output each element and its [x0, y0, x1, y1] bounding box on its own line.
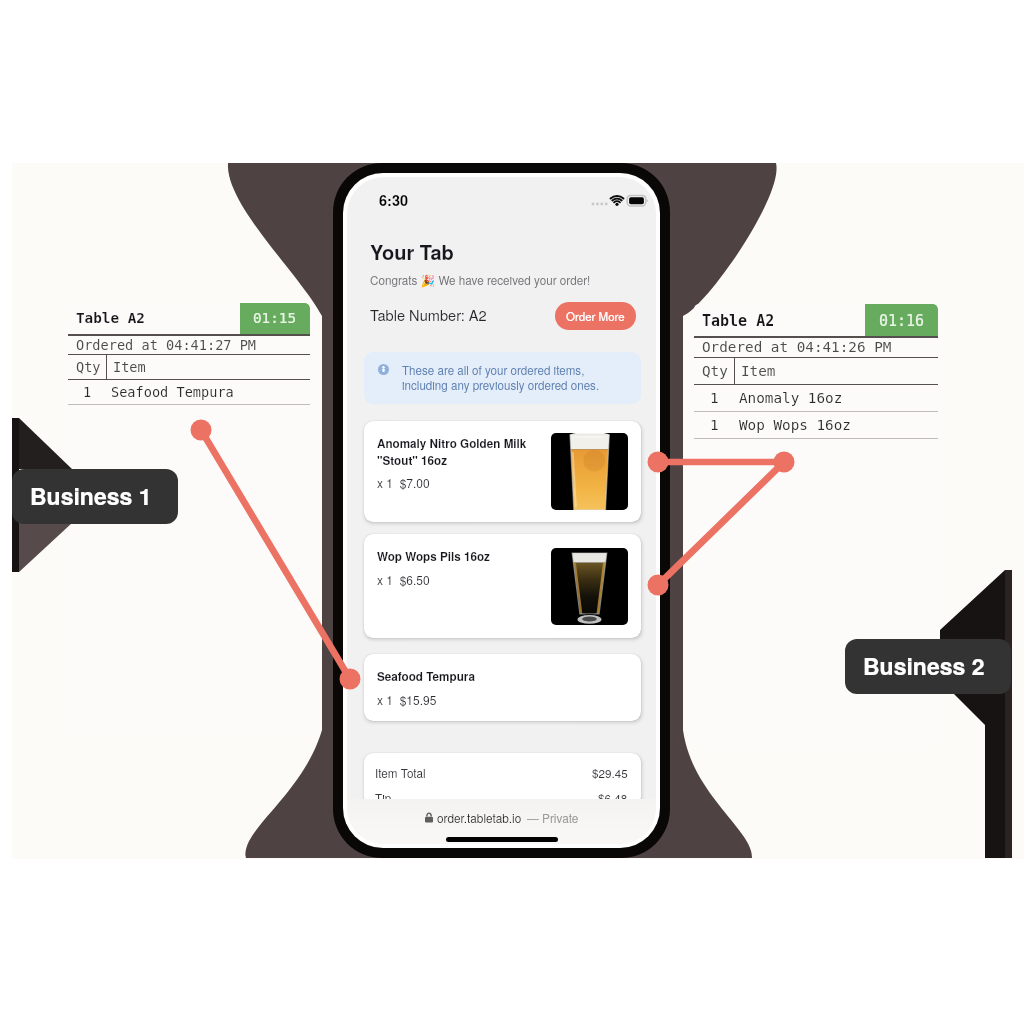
staticText: Item [113, 359, 146, 375]
button[interactable]: Business 1 [12, 469, 178, 524]
staticText: Order More [566, 308, 625, 324]
staticText: Ordered at 04:41:26 PM [702, 339, 892, 356]
staticText: These are all of your ordered items, inc… [402, 362, 630, 393]
staticText: 01:15 [253, 310, 297, 327]
staticText: Item Total [375, 765, 426, 782]
staticText: Table Number: A2 [370, 304, 487, 325]
staticText: x 1 $7.00 [377, 474, 430, 491]
staticText: Anomaly Nitro Golden Milk "Stout" 16oz [377, 435, 527, 468]
staticText: 1 [710, 390, 719, 407]
button[interactable]: Seafood Tempura [364, 654, 641, 721]
staticText: 1 [83, 384, 92, 400]
staticText: $6.48 [598, 790, 628, 806]
staticText: $29.45 [592, 765, 628, 782]
button[interactable]: Business 2 [845, 639, 1011, 694]
staticText: Anomaly 16oz [739, 390, 843, 407]
staticText: 01:16 [879, 312, 925, 329]
staticText: x 1 $15.95 [377, 691, 437, 708]
staticText: order.tabletab.io [437, 809, 522, 826]
staticText: Tip [375, 790, 392, 806]
staticText: Ordered at 04:41:27 PM [76, 337, 257, 353]
staticText: Item [741, 363, 776, 380]
staticText: Table A2 [76, 310, 145, 327]
staticText: Congrats 🎉 We have received your order! [370, 272, 591, 289]
staticText: 1 [710, 417, 719, 434]
staticText: Wop Wops 16oz [739, 417, 851, 434]
staticText: — Private [527, 809, 579, 826]
staticText: x 1 $6.50 [377, 571, 430, 588]
staticText: Seafood Tempura [377, 668, 475, 685]
button[interactable]: Anomaly Nitro Golden Milk "Stout" 16oz [364, 421, 641, 522]
staticText: Your Tab [370, 237, 454, 266]
staticText: Seafood Tempura [111, 384, 234, 400]
staticText: Wop Wops Pils 16oz [377, 548, 490, 565]
button[interactable]: Wop Wops Pils 16oz [364, 534, 641, 638]
staticText: Qty [702, 363, 728, 380]
button[interactable]: Order More [555, 302, 636, 330]
staticText: Business 2 [863, 649, 985, 682]
staticText: Business 1 [30, 479, 152, 512]
staticText: Qty [76, 359, 101, 375]
staticText: 6:30 [379, 190, 409, 211]
staticText: Table A2 [702, 312, 775, 329]
